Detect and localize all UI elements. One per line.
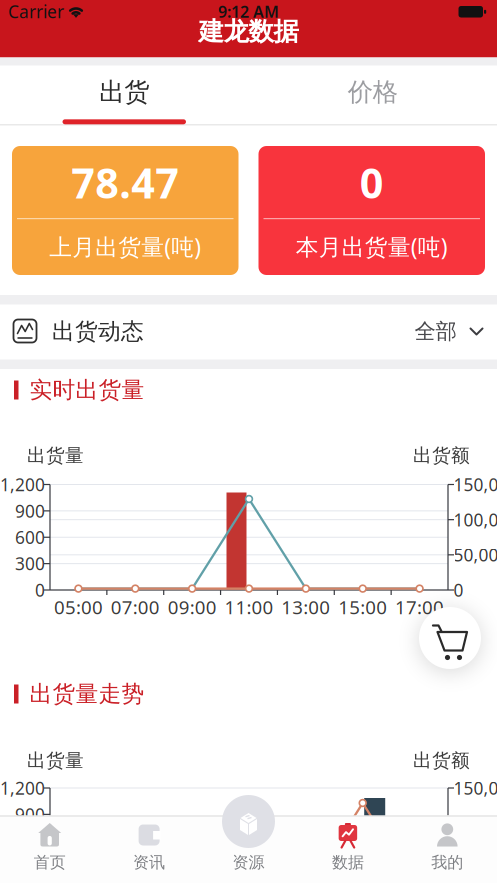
staticText: 出货 — [99, 76, 149, 107]
staticText: 07:00 — [111, 595, 160, 619]
button[interactable]: 首页 — [0, 815, 99, 882]
staticText: 1,200 — [0, 776, 45, 799]
staticText: 13:00 — [281, 595, 330, 619]
button[interactable]: 资源 — [199, 815, 298, 882]
staticText: 出货量 — [27, 749, 84, 772]
staticText: 数据 — [332, 853, 364, 872]
button[interactable]: 数据 — [298, 815, 397, 882]
staticText: 900 — [15, 499, 45, 522]
staticText: 出货额 — [413, 749, 470, 772]
staticText: 05:00 — [54, 595, 103, 619]
staticText: 300 — [15, 552, 45, 575]
staticText: 0 — [35, 578, 45, 601]
button[interactable]: 价格 — [248, 62, 497, 122]
staticText: 出货额 — [413, 444, 470, 467]
staticText: 出货量走势 — [29, 680, 144, 708]
staticText: 我的 — [431, 853, 463, 872]
staticText: 9:12 AM — [218, 1, 279, 22]
staticText: 首页 — [34, 853, 66, 872]
staticText: 150,000 — [453, 473, 497, 496]
staticText: 全部 — [414, 318, 456, 345]
staticText: 本月出货量(吨) — [296, 231, 448, 261]
button[interactable]: Cart — [419, 607, 481, 669]
staticText: 实时出货量 — [29, 376, 144, 404]
button[interactable]: 出货 — [0, 62, 248, 122]
staticText: 资源 — [232, 853, 264, 872]
staticText: 0 — [453, 578, 463, 601]
staticText: 价格 — [348, 76, 398, 107]
staticText: 78.47 — [71, 155, 179, 210]
staticText: 100,000 — [453, 508, 497, 531]
staticText: 09:00 — [168, 595, 217, 619]
staticText: 15:00 — [338, 595, 387, 619]
staticText: 11:00 — [224, 595, 273, 619]
staticText: 1,200 — [0, 473, 45, 496]
staticText: 50,000 — [453, 543, 497, 566]
staticText: 出货动态 — [52, 318, 144, 345]
staticText: 17:00 — [395, 595, 444, 619]
button[interactable]: 全部 — [414, 318, 483, 345]
staticText: 900 — [15, 803, 45, 826]
staticText: 0 — [360, 155, 384, 210]
staticText: 建龙数据 — [198, 16, 298, 47]
staticText: 上月出货量(吨) — [49, 231, 201, 261]
staticText: 出货量 — [27, 444, 84, 467]
staticText: 资讯 — [133, 853, 165, 872]
button[interactable]: 资讯 — [100, 815, 199, 882]
button[interactable]: 我的 — [398, 815, 497, 882]
staticText: Carrier — [8, 0, 64, 23]
staticText: 150,000 — [453, 776, 497, 799]
staticText: 600 — [15, 526, 45, 549]
